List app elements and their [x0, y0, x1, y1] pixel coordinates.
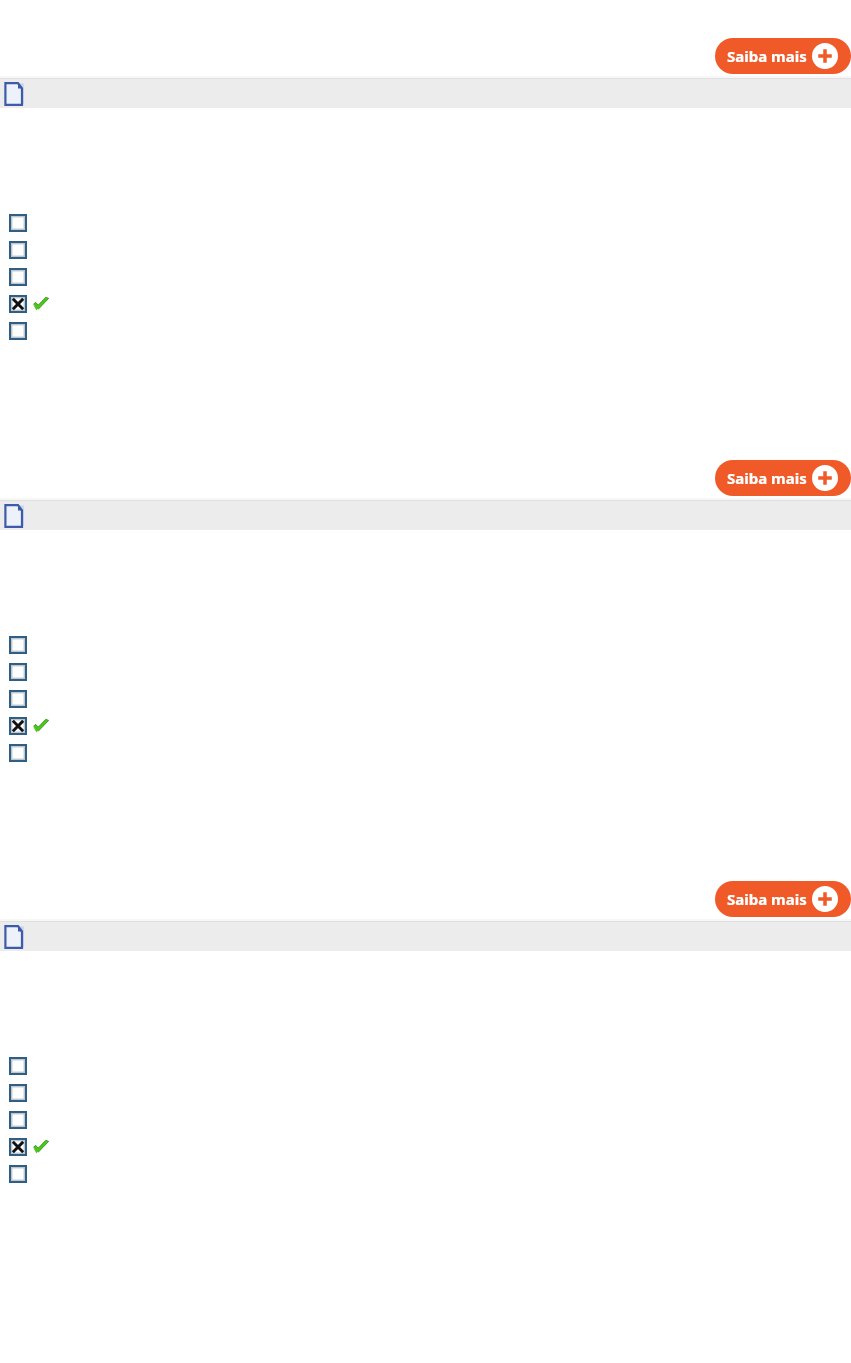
button[interactable] — [9, 1111, 27, 1129]
button[interactable] — [9, 663, 27, 681]
button[interactable]: Document — [4, 504, 24, 528]
button[interactable] — [9, 636, 27, 654]
button[interactable] — [9, 744, 27, 762]
button[interactable] — [9, 1084, 27, 1102]
button[interactable]: Saiba mais — [715, 38, 851, 74]
staticText: Saiba mais — [727, 889, 807, 909]
button[interactable]: Saiba mais — [715, 460, 851, 496]
button[interactable]: Correct — [9, 1138, 49, 1156]
button[interactable]: Correct — [9, 717, 49, 735]
button[interactable]: Saiba mais — [715, 881, 851, 917]
button[interactable] — [9, 1165, 27, 1183]
button[interactable]: Correct — [9, 295, 49, 313]
button[interactable] — [9, 322, 27, 340]
staticText: Saiba mais — [727, 468, 807, 488]
button[interactable] — [9, 690, 27, 708]
other: Correct — [33, 1140, 49, 1154]
button[interactable] — [9, 241, 27, 259]
staticText: Saiba mais — [727, 46, 807, 66]
button[interactable]: Document — [4, 925, 24, 949]
button[interactable] — [9, 1057, 27, 1075]
other: Correct — [33, 297, 49, 311]
other: Correct — [33, 719, 49, 733]
button[interactable]: Document — [4, 82, 24, 106]
button[interactable] — [9, 214, 27, 232]
button[interactable] — [9, 268, 27, 286]
